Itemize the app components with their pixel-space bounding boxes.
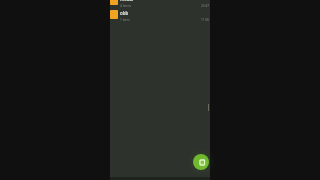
- button[interactable]: obb: [110, 7, 210, 21]
- button[interactable]: New folder: [193, 154, 209, 170]
- staticText: 11:06: [201, 18, 210, 22]
- staticText: 4 items: [120, 4, 131, 8]
- staticText: 1 item: [120, 18, 130, 22]
- staticText: media: [120, 0, 134, 2]
- button[interactable]: media: [110, 0, 210, 7]
- staticText: 23:47: [201, 4, 210, 8]
- staticText: obb: [120, 10, 129, 16]
